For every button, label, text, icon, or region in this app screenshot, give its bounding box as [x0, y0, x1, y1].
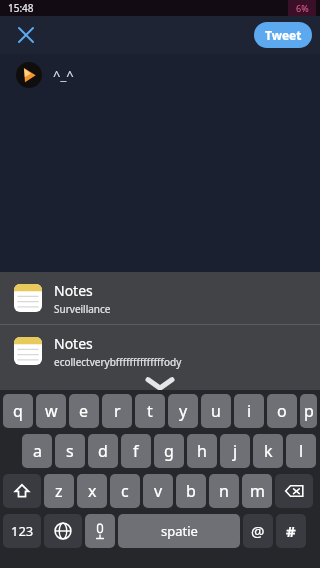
- button[interactable]: g: [154, 434, 184, 468]
- staticText: l: [299, 440, 304, 462]
- button[interactable]: n: [209, 474, 239, 508]
- button[interactable]: Tweet: [254, 22, 312, 48]
- staticText: Notes: [54, 334, 93, 353]
- staticText: d: [98, 440, 108, 462]
- staticText: w: [45, 400, 58, 422]
- staticText: e: [79, 400, 89, 422]
- staticText: h: [197, 440, 207, 462]
- button[interactable]: u: [201, 394, 231, 428]
- button[interactable]: z: [44, 474, 74, 508]
- staticText: Notes: [54, 281, 93, 300]
- button[interactable]: c: [110, 474, 140, 508]
- button[interactable]: t: [135, 394, 165, 428]
- button[interactable]: 123: [3, 514, 41, 548]
- button[interactable]: m: [242, 474, 272, 508]
- staticText: r: [114, 400, 121, 422]
- staticText: n: [219, 480, 229, 502]
- button[interactable]: Close: [10, 19, 42, 51]
- staticText: @: [251, 521, 265, 541]
- staticText: ^_^: [53, 66, 74, 84]
- button[interactable]: Notes: [0, 272, 320, 324]
- button[interactable]: j: [220, 434, 250, 468]
- staticText: Tweet: [265, 27, 302, 43]
- button[interactable]: v: [143, 474, 173, 508]
- staticText: v: [154, 480, 163, 502]
- staticText: a: [33, 440, 42, 462]
- staticText: o: [277, 400, 287, 422]
- button[interactable]: d: [88, 434, 118, 468]
- staticText: p: [304, 400, 314, 422]
- staticText: c: [121, 480, 129, 502]
- button[interactable]: r: [102, 394, 132, 428]
- staticText: s: [66, 440, 74, 462]
- button[interactable]: #: [276, 514, 306, 548]
- button[interactable]: w: [36, 394, 66, 428]
- button[interactable]: q: [3, 394, 33, 428]
- staticText: f: [133, 440, 139, 462]
- staticText: g: [164, 440, 174, 462]
- button[interactable]: @: [243, 514, 273, 548]
- button[interactable]: s: [55, 434, 85, 468]
- staticText: Surveillance: [54, 302, 111, 316]
- staticText: q: [13, 400, 23, 422]
- staticText: 123: [11, 522, 34, 540]
- button[interactable]: y: [168, 394, 198, 428]
- button[interactable]: Profile picture: [16, 62, 42, 88]
- button[interactable]: h: [187, 434, 217, 468]
- staticText: #: [286, 521, 296, 541]
- staticText: k: [264, 440, 273, 462]
- button[interactable]: e: [69, 394, 99, 428]
- staticText: y: [179, 400, 188, 422]
- button[interactable]: k: [253, 434, 283, 468]
- button[interactable]: Change language: [44, 514, 82, 548]
- button[interactable]: f: [121, 434, 151, 468]
- button[interactable]: spatie: [118, 514, 240, 548]
- button[interactable]: p: [300, 394, 317, 428]
- button[interactable]: i: [234, 394, 264, 428]
- button[interactable]: a: [22, 434, 52, 468]
- button[interactable]: x: [77, 474, 107, 508]
- button[interactable]: l: [286, 434, 316, 468]
- staticText: z: [55, 480, 63, 502]
- button[interactable]: Voice input: [85, 514, 115, 548]
- button[interactable]: o: [267, 394, 297, 428]
- staticText: j: [233, 440, 238, 462]
- button[interactable]: Notes: [0, 325, 320, 377]
- button[interactable]: Backspace: [275, 474, 313, 508]
- button[interactable]: b: [176, 474, 206, 508]
- staticText: 15:48: [8, 1, 34, 15]
- staticText: b: [186, 480, 196, 502]
- staticText: spatie: [161, 522, 198, 540]
- button[interactable]: Shift: [3, 474, 41, 508]
- staticText: t: [147, 400, 153, 422]
- staticText: x: [88, 480, 97, 502]
- staticText: 6%: [296, 2, 309, 14]
- staticText: u: [211, 400, 221, 422]
- staticText: m: [250, 480, 265, 502]
- staticText: i: [247, 400, 252, 422]
- staticText: ecollectverybffffffffffffffody: [54, 355, 182, 369]
